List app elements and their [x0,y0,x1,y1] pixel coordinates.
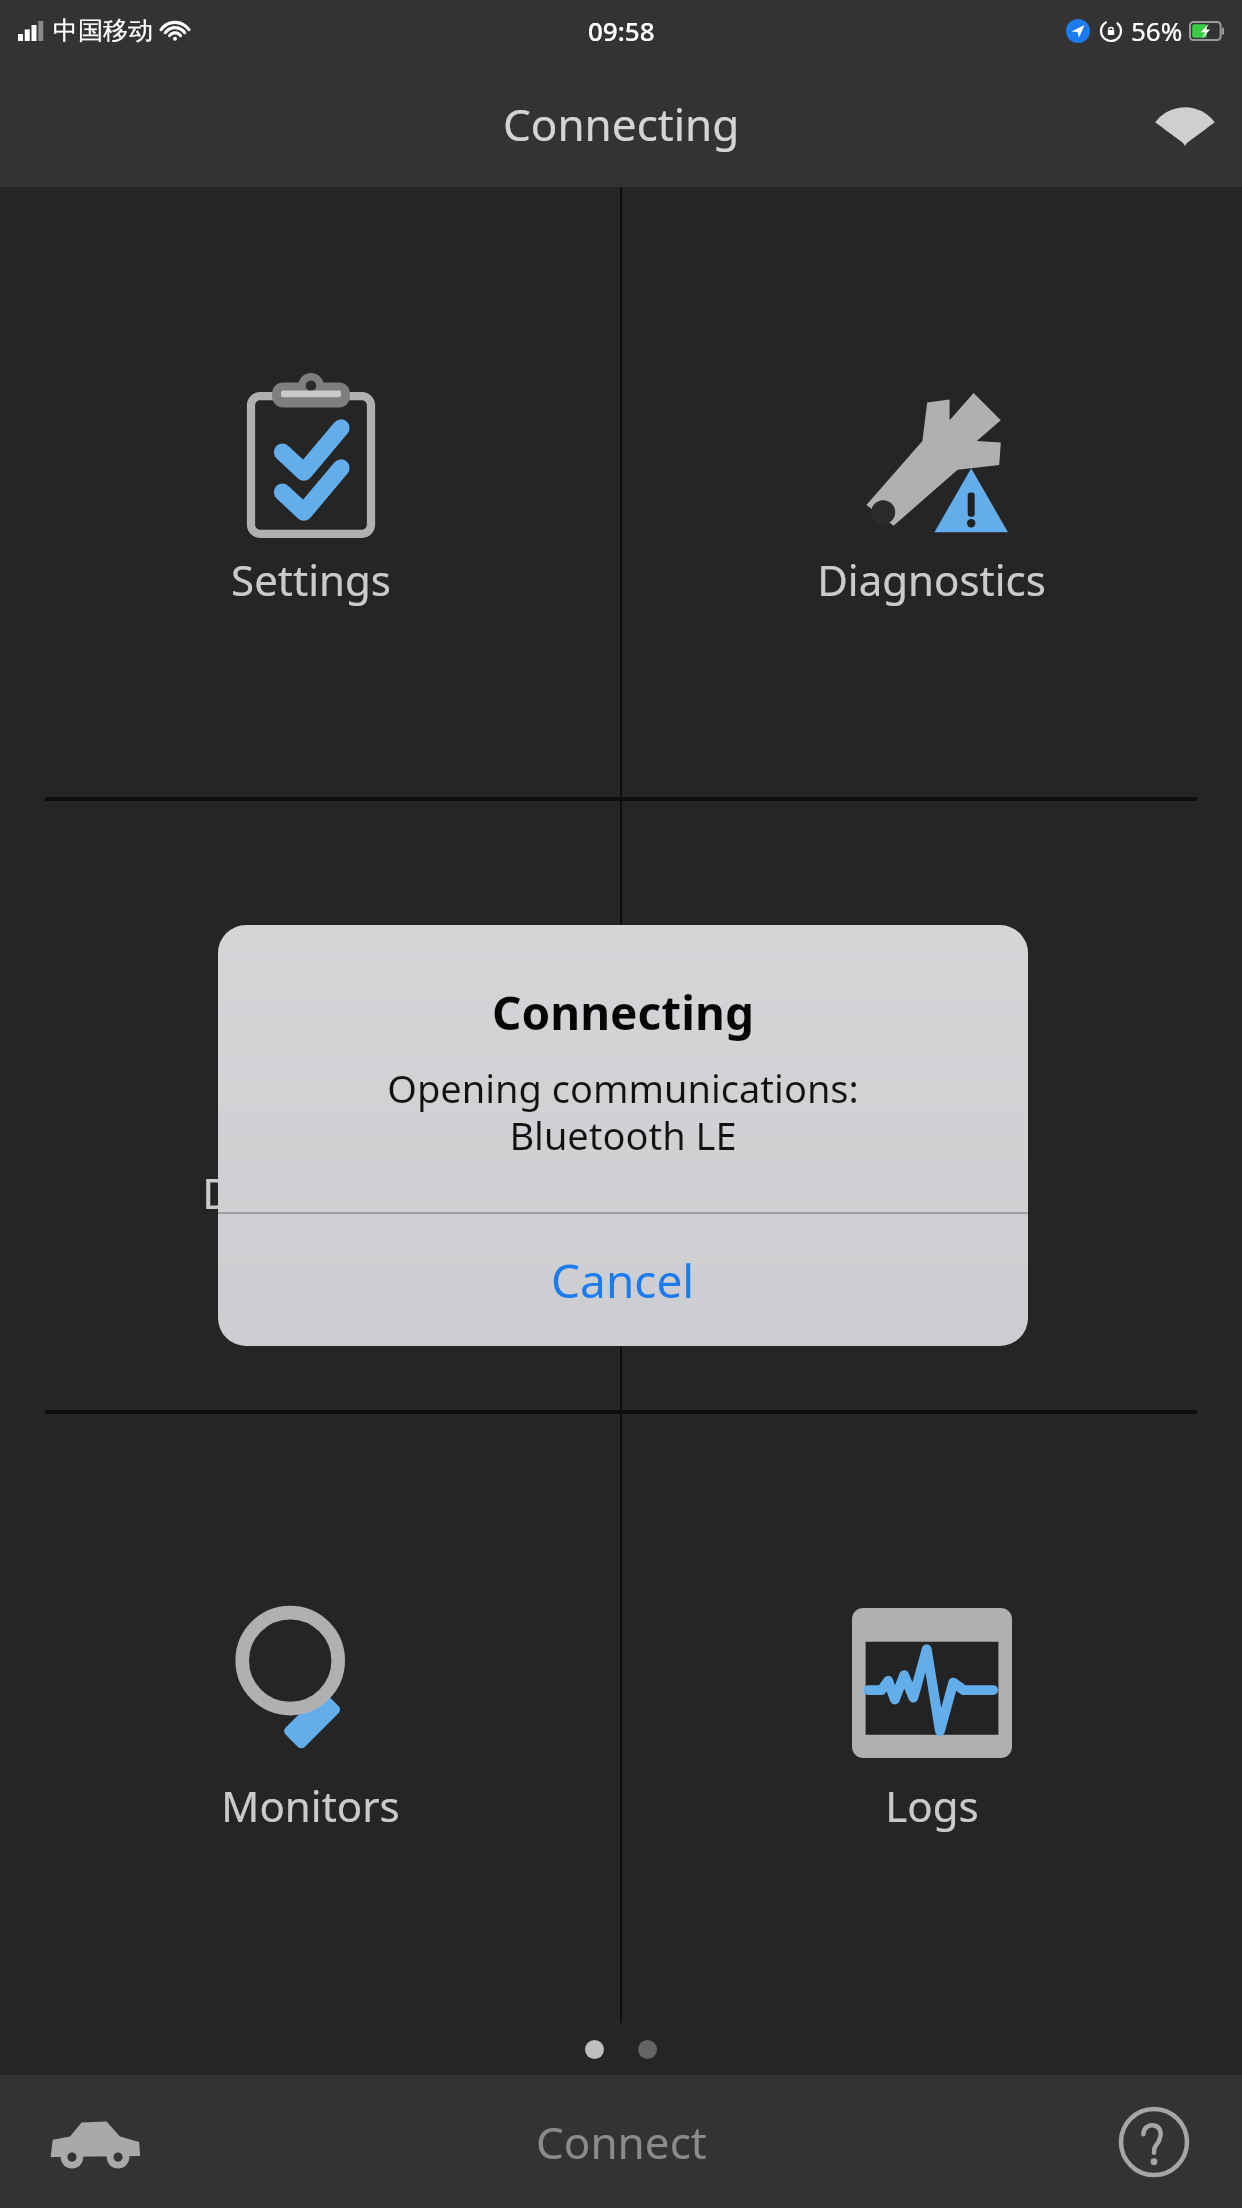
staticText: Connect [536,2112,707,2172]
button[interactable]: Connection status [1154,93,1216,155]
button[interactable]: Cancel [218,1214,1028,1346]
staticText: 56% [1131,13,1183,48]
staticText: Cancel [551,1249,695,1312]
button[interactable]: Vehicle [40,2102,150,2182]
button[interactable]: Help [1106,2094,1202,2190]
button[interactable]: Record [621,801,1242,1410]
button[interactable]: Diagnostics [621,187,1242,797]
staticText: 中国移动 [53,15,153,46]
button[interactable]: Settings [0,187,621,797]
button[interactable]: Connect [496,2096,747,2188]
staticText: Dashboard [202,1164,420,1221]
staticText: Connecting [503,94,740,154]
staticText: Settings [231,551,391,608]
staticText: Opening communications: Bluetooth LE [387,1062,859,1161]
staticText: 09:58 [588,13,655,48]
staticText: Connecting [492,981,754,1044]
staticText: Logs [885,1777,979,1834]
staticText: Monitors [221,1777,400,1834]
button[interactable]: Monitors [0,1414,621,2023]
staticText: Diagnostics [817,551,1046,608]
button[interactable]: Logs [621,1414,1242,2023]
button[interactable]: Dashboard [0,801,621,1410]
staticText: Record [863,1164,1001,1221]
